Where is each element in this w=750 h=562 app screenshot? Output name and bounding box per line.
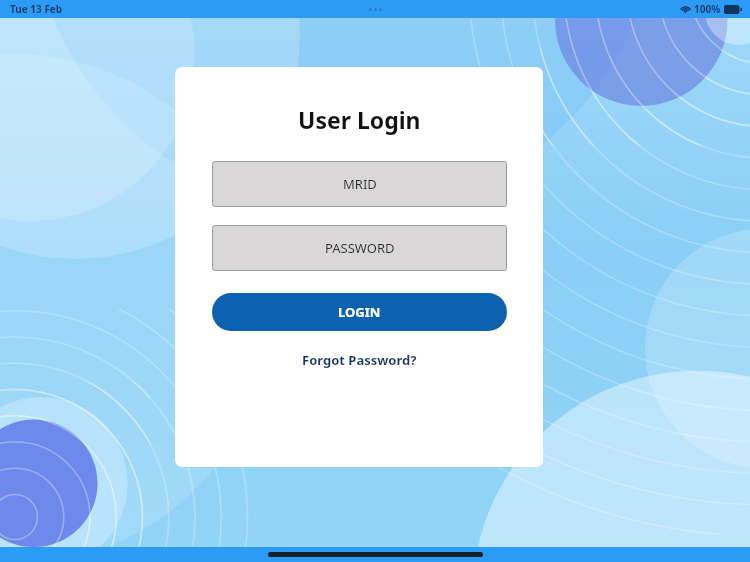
- staticText: MRID: [343, 175, 377, 193]
- staticText: Forgot Password?: [302, 351, 417, 369]
- staticText: LOGIN: [338, 303, 381, 321]
- button[interactable]: MRID: [212, 161, 507, 207]
- button[interactable]: LOGIN: [212, 293, 507, 331]
- other: Battery: [724, 5, 742, 14]
- staticText: User Login: [298, 104, 421, 135]
- staticText: 100%: [694, 2, 721, 16]
- button[interactable]: Forgot Password?: [296, 348, 423, 372]
- button[interactable]: PASSWORD: [212, 225, 507, 271]
- staticText: Tue 13 Feb: [10, 2, 63, 16]
- staticText: PASSWORD: [325, 239, 395, 257]
- other: Wi-Fi: [680, 4, 691, 15]
